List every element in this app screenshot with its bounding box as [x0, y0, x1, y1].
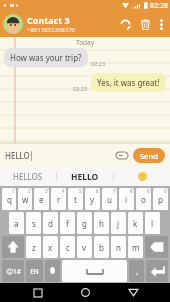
button[interactable]: q	[2, 188, 16, 210]
button[interactable]: d	[43, 212, 58, 234]
staticText: 02:23	[73, 85, 88, 92]
staticText: HELLO	[71, 171, 99, 183]
button[interactable]: Contact avatar	[3, 14, 23, 34]
button[interactable]: How was your trip?	[4, 48, 88, 67]
staticText: i	[125, 194, 128, 205]
button[interactable]: Call	[115, 14, 135, 34]
staticText: a	[14, 218, 19, 229]
button[interactable]: HELLO	[5, 150, 114, 161]
staticText: l	[151, 218, 154, 229]
staticText: ☺1#	[6, 267, 21, 276]
staticText: 1	[12, 188, 15, 194]
button[interactable]: r	[51, 188, 66, 210]
staticText: 6	[96, 188, 99, 194]
button[interactable]: f	[60, 212, 75, 234]
staticText: 02:28	[150, 1, 168, 11]
button[interactable]: k	[128, 212, 143, 234]
staticText: Today	[76, 38, 95, 47]
staticText: q	[7, 194, 12, 205]
staticText: j	[117, 218, 120, 229]
button[interactable]: n	[111, 236, 126, 258]
button[interactable]: t	[68, 188, 83, 210]
staticText: HELLO	[5, 150, 30, 161]
button[interactable]: h	[94, 212, 109, 234]
button[interactable]: EN	[26, 260, 43, 282]
staticText: s	[32, 218, 36, 229]
button[interactable]: o	[136, 188, 151, 210]
staticText: z	[32, 242, 36, 253]
staticText: b	[99, 242, 104, 253]
button[interactable]: s	[26, 212, 41, 234]
button[interactable]: p	[153, 188, 168, 210]
button[interactable]: w	[18, 188, 32, 210]
staticText: Send	[140, 151, 158, 161]
staticText: d	[48, 218, 53, 229]
staticText: r	[57, 194, 61, 205]
staticText: 4	[62, 188, 65, 194]
button[interactable]: a	[9, 212, 24, 234]
staticText: e	[39, 194, 44, 205]
staticText: Yes, it was great!	[97, 77, 160, 88]
button[interactable]: g	[77, 212, 92, 234]
button[interactable]: HELLOS	[0, 167, 56, 186]
button[interactable]: y	[85, 188, 100, 210]
staticText: m	[132, 242, 140, 253]
button[interactable]: Yes, it was great!	[91, 73, 166, 92]
staticText: 7	[113, 188, 116, 194]
button[interactable]: Settings	[45, 260, 60, 282]
button[interactable]: z	[26, 236, 41, 258]
button[interactable]: Recents	[28, 283, 48, 302]
button[interactable]: ☺1#	[2, 260, 24, 282]
button[interactable]: v	[77, 236, 92, 258]
staticText: Contact 3	[27, 14, 70, 26]
staticText: n	[116, 242, 121, 253]
staticText: t	[74, 194, 77, 205]
staticText: ,	[136, 267, 138, 276]
staticText: v	[82, 242, 87, 253]
staticText: u	[107, 194, 112, 205]
staticText: g	[82, 218, 87, 229]
staticText: c	[66, 242, 70, 253]
staticText: How was your trip?	[10, 52, 82, 63]
button[interactable]: Space	[62, 260, 127, 282]
staticText: x	[48, 242, 53, 253]
staticText: 5	[79, 188, 82, 194]
staticText: o	[141, 194, 146, 205]
staticText: 3	[45, 188, 48, 194]
staticText: f	[66, 218, 69, 229]
button[interactable]: e	[34, 188, 49, 210]
button[interactable]: Home	[75, 283, 95, 302]
button[interactable]: m	[128, 236, 143, 258]
staticText: 2	[28, 188, 31, 194]
button[interactable]: j	[111, 212, 126, 234]
button[interactable]: HELLO	[57, 167, 113, 186]
button[interactable]: u	[102, 188, 117, 210]
button[interactable]: c	[60, 236, 75, 258]
staticText: +8613852298370	[27, 26, 76, 34]
staticText: 0	[164, 188, 167, 194]
button[interactable]	[114, 167, 170, 186]
staticText: h	[99, 218, 104, 229]
button[interactable]: l	[145, 212, 160, 234]
staticText: p	[158, 194, 163, 205]
staticText: w	[22, 194, 29, 205]
staticText: 02:23	[91, 60, 106, 67]
staticText: 9	[147, 188, 150, 194]
button[interactable]: Enter	[146, 260, 168, 282]
staticText: k	[133, 218, 138, 229]
staticText: EN	[30, 267, 39, 276]
staticText: 8	[130, 188, 133, 194]
button[interactable]: Send	[133, 148, 165, 163]
staticText: HELLOS	[13, 171, 43, 182]
button[interactable]: b	[94, 236, 109, 258]
button[interactable]: Attach	[114, 147, 130, 163]
button[interactable]: Shift	[2, 236, 24, 258]
staticText: y	[90, 194, 95, 205]
button[interactable]: Backspace	[145, 236, 168, 258]
button[interactable]: i	[119, 188, 134, 210]
button[interactable]: ,	[129, 260, 144, 282]
button[interactable]: x	[43, 236, 58, 258]
button[interactable]: Back	[123, 283, 143, 302]
button[interactable]: Delete	[135, 14, 155, 34]
button[interactable]: More options	[155, 14, 167, 34]
